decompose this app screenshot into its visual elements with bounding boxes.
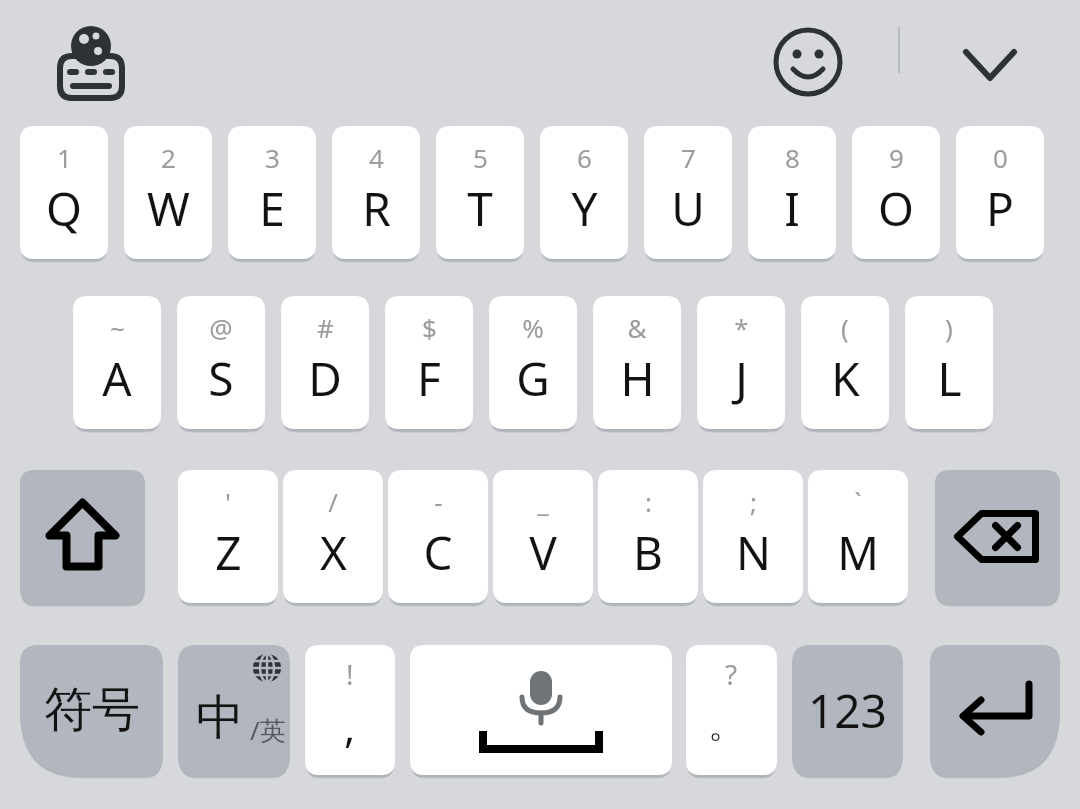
button[interactable]: Space — [410, 645, 672, 775]
staticText: U — [671, 177, 705, 240]
staticText: 8 — [785, 140, 800, 175]
staticText: 符号 — [44, 680, 140, 740]
staticText: ; — [750, 484, 757, 519]
staticText: ! — [346, 655, 354, 693]
button[interactable]: Emoji — [772, 26, 844, 98]
staticText: ~ — [110, 310, 125, 345]
button[interactable]: ! — [305, 645, 395, 775]
button[interactable]: $ — [385, 296, 473, 429]
button[interactable]: 2 — [124, 126, 212, 259]
staticText: 5 — [473, 140, 488, 175]
staticText: 中 — [196, 688, 244, 748]
button[interactable]: 符号 — [20, 645, 163, 775]
staticText: O — [878, 177, 914, 240]
button[interactable]: 0 — [956, 126, 1044, 259]
button[interactable]: _ — [493, 470, 593, 603]
button[interactable]: Switch input language — [46, 20, 136, 100]
staticText: 9 — [889, 140, 904, 175]
button[interactable]: 7 — [644, 126, 732, 259]
button[interactable]: Backspace — [935, 470, 1060, 603]
staticText: * — [734, 310, 749, 345]
button[interactable]: @ — [177, 296, 265, 429]
staticText: N — [736, 521, 771, 584]
button[interactable]: Shift — [20, 470, 145, 603]
button[interactable]: 9 — [852, 126, 940, 259]
button[interactable]: Hide keyboard — [950, 26, 1030, 98]
staticText: D — [308, 347, 342, 410]
staticText: ( — [841, 310, 849, 345]
staticText: P — [986, 177, 1014, 240]
staticText: 3 — [265, 140, 280, 175]
staticText: E — [259, 177, 285, 240]
staticText: V — [529, 521, 557, 584]
staticText: M — [837, 521, 879, 584]
button[interactable]: & — [593, 296, 681, 429]
button[interactable]: ) — [905, 296, 993, 429]
staticText: 1 — [57, 140, 72, 175]
staticText: ` — [854, 484, 862, 519]
button[interactable]: : — [598, 470, 698, 603]
button[interactable]: ` — [808, 470, 908, 603]
button[interactable]: 3 — [228, 126, 316, 259]
button[interactable]: 1 — [20, 126, 108, 259]
button[interactable]: 5 — [436, 126, 524, 259]
button[interactable]: 8 — [748, 126, 836, 259]
button[interactable]: / — [283, 470, 383, 603]
staticText: 2 — [161, 140, 176, 175]
staticText: @ — [209, 310, 233, 345]
staticText: Y — [571, 177, 598, 240]
button[interactable]: ( — [801, 296, 889, 429]
staticText: T — [467, 177, 493, 240]
button[interactable]: ' — [178, 470, 278, 603]
button[interactable]: Enter — [930, 645, 1060, 775]
staticText: W — [147, 177, 190, 240]
staticText: S — [208, 347, 234, 410]
staticText: - — [434, 484, 443, 519]
staticText: X — [320, 521, 347, 584]
staticText: , — [344, 698, 356, 755]
staticText: Z — [215, 521, 242, 584]
staticText: I — [784, 177, 800, 240]
staticText: Q — [46, 177, 82, 240]
staticText: J — [735, 347, 748, 410]
staticText: C — [423, 521, 453, 584]
staticText: $ — [422, 310, 437, 345]
button[interactable]: * — [697, 296, 785, 429]
button[interactable]: % — [489, 296, 577, 429]
staticText: R — [362, 177, 391, 240]
staticText: & — [627, 310, 647, 345]
button[interactable]: - — [388, 470, 488, 603]
staticText: G — [516, 347, 550, 410]
staticText: 0 — [993, 140, 1008, 175]
staticText: 123 — [808, 679, 887, 742]
button[interactable]: 4 — [332, 126, 420, 259]
staticText: ? — [725, 655, 738, 693]
staticText: / — [328, 484, 338, 519]
staticText: K — [831, 347, 860, 410]
staticText: B — [633, 521, 663, 584]
staticText: L — [937, 347, 962, 410]
staticText: ) — [945, 310, 953, 345]
button[interactable]: 6 — [540, 126, 628, 259]
button[interactable]: # — [281, 296, 369, 429]
staticText: F — [417, 347, 441, 410]
staticText: A — [102, 347, 132, 410]
staticText: 4 — [369, 140, 384, 175]
staticText: % — [522, 310, 544, 345]
button[interactable]: 中 — [178, 645, 290, 775]
button[interactable]: ; — [703, 470, 803, 603]
staticText: 。 — [708, 702, 744, 747]
staticText: 6 — [577, 140, 592, 175]
button[interactable]: ~ — [73, 296, 161, 429]
staticText: 7 — [681, 140, 696, 175]
staticText: _ — [537, 484, 549, 519]
staticText: H — [620, 347, 655, 410]
button[interactable]: 123 — [792, 645, 903, 775]
staticText: # — [317, 310, 334, 345]
staticText: /英 — [250, 712, 286, 748]
button[interactable]: ? — [686, 645, 777, 775]
staticText: ' — [225, 484, 231, 519]
staticText: : — [645, 484, 652, 519]
